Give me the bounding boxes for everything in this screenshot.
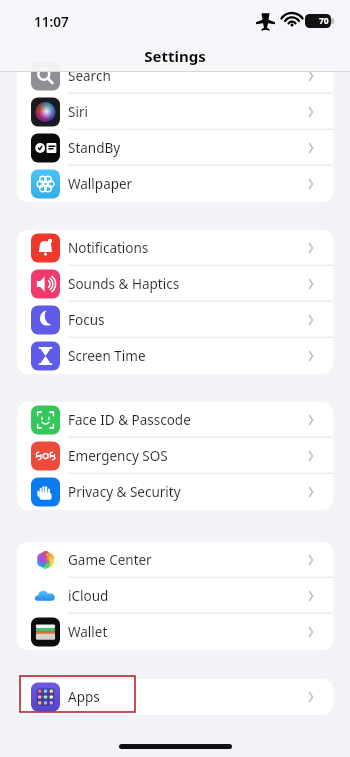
button[interactable]: Siri <box>17 94 333 130</box>
staticText: iCloud <box>68 587 109 605</box>
button[interactable]: Wallpaper <box>17 166 333 202</box>
button[interactable]: Wallet <box>17 614 333 650</box>
staticText: Search <box>68 67 111 85</box>
button[interactable]: Sounds & Haptics <box>17 266 333 302</box>
staticText: Apps <box>68 688 100 706</box>
staticText: Settings <box>0 46 350 66</box>
staticText: Sounds & Haptics <box>68 275 180 293</box>
button[interactable]: Search <box>17 58 333 94</box>
button[interactable]: Face ID & Passcode <box>17 402 333 438</box>
staticText: Focus <box>68 311 105 329</box>
staticText: Game Center <box>68 551 152 569</box>
staticText: 70 <box>319 15 329 27</box>
staticText: Siri <box>68 103 88 121</box>
staticText: Face ID & Passcode <box>68 411 191 429</box>
staticText: Emergency SOS <box>68 447 168 465</box>
staticText: Notifications <box>68 239 149 257</box>
staticText: Privacy & Security <box>68 483 181 501</box>
staticText: Wallet <box>68 623 108 641</box>
button[interactable]: Emergency SOS <box>17 438 333 474</box>
staticText: Wallpaper <box>68 175 133 193</box>
button[interactable]: StandBy <box>17 130 333 166</box>
button[interactable]: Apps <box>17 679 333 715</box>
staticText: 11:07 <box>34 13 69 31</box>
button[interactable]: Privacy & Security <box>17 474 333 510</box>
staticText: StandBy <box>68 139 121 157</box>
staticText: Screen Time <box>68 347 146 365</box>
button[interactable]: Focus <box>17 302 333 338</box>
button[interactable]: Notifications <box>17 230 333 266</box>
button[interactable]: Game Center <box>17 542 333 578</box>
button[interactable]: iCloud <box>17 578 333 614</box>
button[interactable]: Screen Time <box>17 338 333 374</box>
